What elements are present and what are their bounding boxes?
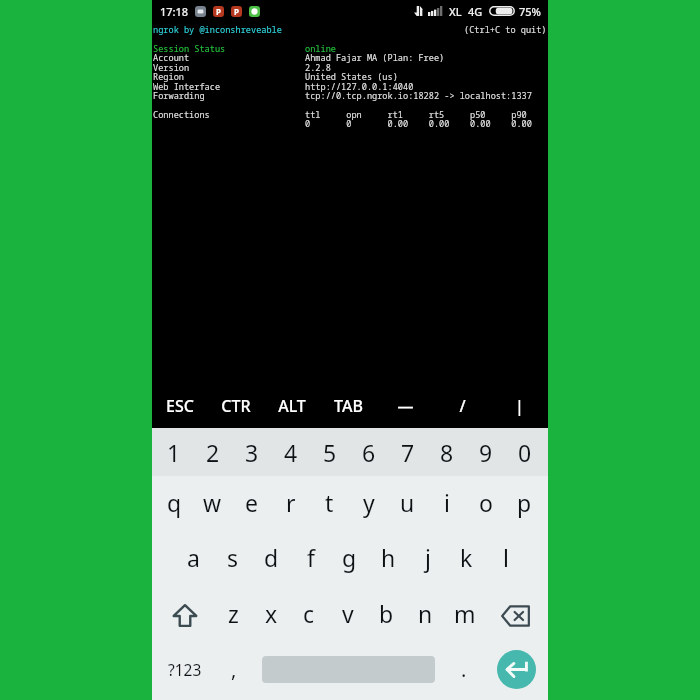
staticText: ?123 [168,659,202,680]
staticText: b [379,598,394,629]
staticText: (Ctrl+C to quit) [464,24,547,36]
button[interactable]: 2 [193,428,232,476]
button[interactable]: f [291,530,330,585]
button[interactable]: n [406,585,445,642]
staticText: r [286,487,296,518]
button[interactable]: — [377,384,434,428]
staticText: TAB [334,395,363,417]
staticText: d [264,542,279,573]
staticText: P [234,6,239,17]
staticText: XL [449,4,462,19]
staticText: CTR [221,395,251,417]
staticText: ESC [166,395,194,417]
button[interactable]: 1 [155,428,193,476]
button[interactable]: x [252,585,290,642]
staticText: x [265,598,278,629]
button[interactable]: 9 [466,428,505,476]
button[interactable]: c [290,585,328,642]
staticText: a [187,542,200,573]
button[interactable]: r [271,475,310,530]
staticText: P [216,6,221,17]
button[interactable]: 0 [505,428,544,476]
staticText: | [515,395,524,417]
button[interactable]: e [232,475,271,530]
button[interactable]: 7 [388,428,427,476]
staticText: Web Interface [153,81,221,93]
button[interactable]: g [330,530,369,585]
button[interactable]: k [447,530,486,585]
button[interactable]: v [328,585,367,642]
staticText: . [461,656,467,683]
staticText: g [342,542,357,573]
button[interactable]: q [155,475,193,530]
staticText: 2.2.8 [305,62,331,74]
staticText: 2 [206,437,220,468]
staticText: 4 [284,437,298,468]
staticText: c [303,598,315,629]
staticText: f [307,542,315,573]
staticText: p [517,487,532,518]
button[interactable]: Backspace [484,585,544,642]
staticText: Ahmad Fajar MA (Plan: Free) [305,52,445,64]
staticText: l [503,542,509,573]
button[interactable]: CTR [208,384,264,428]
staticText: z [228,598,239,629]
button[interactable]: j [408,530,447,585]
staticText: y [363,487,375,518]
button[interactable]: / [434,384,491,428]
staticText: j [425,542,431,573]
button[interactable]: w [193,475,232,530]
staticText: http://127.0.0.1:4040 [305,81,414,93]
staticText: 8 [440,437,454,468]
staticText: 9 [479,437,493,468]
button[interactable]: o [466,475,505,530]
button[interactable]: 4 [271,428,310,476]
staticText: Version [153,62,190,74]
button[interactable]: d [252,530,291,585]
button[interactable]: s [213,530,252,585]
button[interactable]: a [174,530,213,585]
staticText: h [381,542,396,573]
button[interactable]: ESC [152,384,208,428]
staticText: t [325,487,334,518]
button[interactable]: z [214,585,252,642]
staticText: u [400,487,415,518]
button[interactable]: 8 [427,428,466,476]
staticText: w [203,487,222,518]
button[interactable]: m [445,585,484,642]
staticText: ngrok by @inconshreveable [153,24,282,36]
button[interactable]: h [369,530,408,585]
staticText: n [418,598,433,629]
button[interactable]: t [310,475,349,530]
staticText: / [459,395,466,417]
button[interactable]: Enter [484,641,548,698]
staticText: 4G [468,4,483,19]
button[interactable]: y [349,475,388,530]
button[interactable]: ?123 [155,641,214,698]
button[interactable]: 6 [349,428,388,476]
button[interactable]: , [214,641,253,698]
button[interactable]: u [388,475,427,530]
button[interactable]: | [491,384,548,428]
staticText: e [245,487,258,518]
button[interactable]: p [505,475,544,530]
button[interactable]: 5 [310,428,349,476]
staticText: 3 [245,437,259,468]
staticText: o [479,487,493,518]
button[interactable]: ALT [264,384,320,428]
button[interactable]: i [427,475,466,530]
button[interactable]: 3 [232,428,271,476]
button[interactable]: Shift [155,585,214,642]
button[interactable]: l [486,530,525,585]
staticText: Region [153,71,184,83]
button[interactable]: TAB [320,384,377,428]
button[interactable] [253,641,444,698]
staticText: s [227,542,239,573]
staticText: United States (us) [305,71,398,83]
staticText: q [167,487,182,518]
button[interactable]: b [367,585,406,642]
button[interactable]: . [444,641,484,698]
staticText: 6 [362,437,376,468]
staticText: 0 0 0.00 0.00 0.00 0.00 [305,118,532,130]
staticText: 0 [518,437,532,468]
